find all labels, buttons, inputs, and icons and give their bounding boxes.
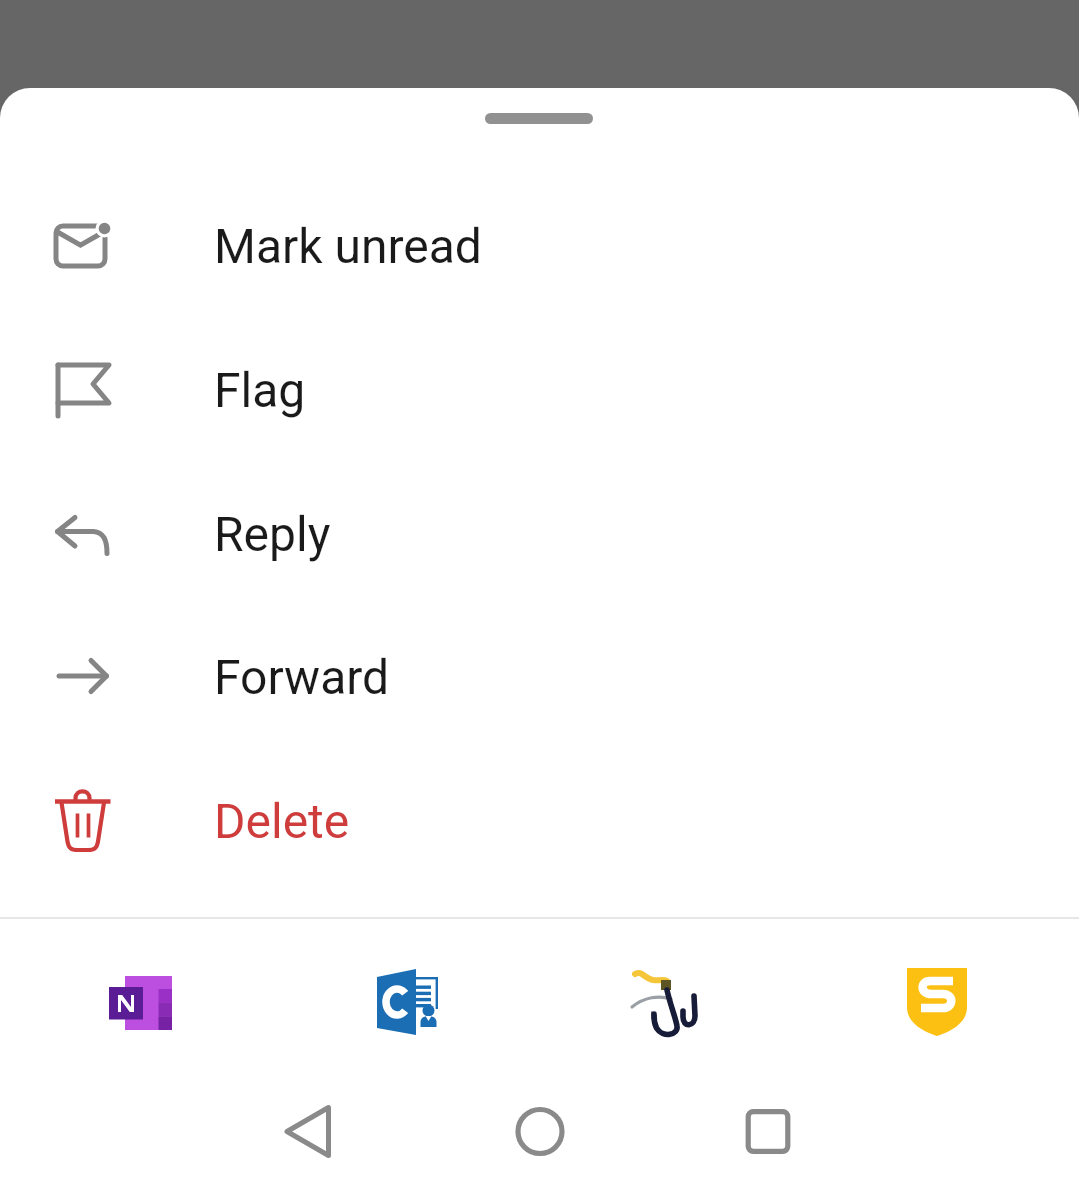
staticText: Delete [214,793,350,849]
button[interactable]: Forward [0,605,1079,749]
button[interactable]: Home [480,1071,600,1191]
staticText: Mark unread [214,218,482,274]
button[interactable]: Protection [877,945,997,1065]
staticText: Reply [214,506,331,562]
button[interactable]: Back [248,1071,368,1191]
staticText: Forward [214,649,390,705]
button[interactable]: Report phishing [610,945,730,1065]
button[interactable]: Delete [0,749,1079,893]
staticText: Flag [214,362,306,418]
button[interactable]: Contacts [348,945,468,1065]
button[interactable]: Reply [0,462,1079,606]
button[interactable]: Flag [0,318,1079,462]
button[interactable]: OneNote [79,945,199,1065]
button[interactable]: Recents [708,1071,828,1191]
button[interactable]: Mark unread [0,174,1079,318]
